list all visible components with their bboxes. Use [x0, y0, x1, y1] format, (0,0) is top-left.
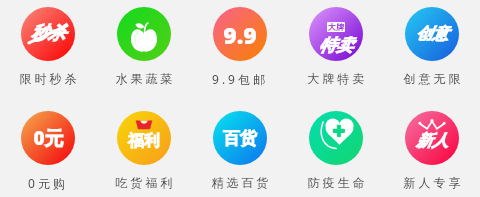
button[interactable]: 0元购: [0, 104, 96, 197]
staticText: 防疫生命: [306, 175, 366, 190]
other: 精选百货: [213, 111, 267, 165]
other: 水果蔬菜: [117, 7, 171, 61]
button[interactable]: 限时秒杀: [0, 0, 96, 104]
staticText: 特卖: [319, 35, 353, 56]
staticText: 吃货福利: [114, 175, 174, 190]
button[interactable]: 防疫生命: [288, 104, 384, 197]
other: 大牌特卖: [309, 7, 363, 61]
staticText: 限时秒杀: [18, 71, 78, 86]
button[interactable]: 创意无限: [384, 0, 480, 104]
staticText: 秒杀: [31, 22, 65, 45]
staticText: 9.9包邮: [212, 71, 268, 87]
button[interactable]: 新人专享: [384, 104, 480, 197]
staticText: 9.9: [223, 19, 257, 50]
staticText: 创意无限: [402, 71, 462, 86]
staticText: 大牌特卖: [306, 71, 366, 86]
other: 9.9包邮: [213, 7, 267, 61]
other: 创意无限: [405, 7, 459, 61]
staticText: 大牌: [328, 22, 344, 32]
other: 吃货福利: [117, 111, 171, 165]
staticText: 水果蔬菜: [114, 71, 174, 86]
staticText: 0元: [33, 125, 64, 151]
staticText: 精选百货: [210, 175, 270, 190]
other: 防疫生命: [309, 111, 363, 165]
staticText: 百货: [223, 128, 257, 149]
button[interactable]: 大牌特卖: [288, 0, 384, 104]
button[interactable]: 精选百货: [192, 104, 288, 197]
staticText: 创意: [416, 24, 448, 44]
staticText: 新人专享: [402, 175, 462, 190]
button[interactable]: 水果蔬菜: [96, 0, 192, 104]
staticText: 新人: [416, 131, 448, 151]
button[interactable]: 9.9包邮: [192, 0, 288, 104]
other: 新人专享: [405, 111, 459, 165]
other: 限时秒杀: [21, 7, 75, 61]
button[interactable]: 吃货福利: [96, 104, 192, 197]
staticText: 0元购: [28, 175, 68, 191]
staticText: 福利: [128, 131, 160, 151]
other: 0元购: [21, 111, 75, 165]
